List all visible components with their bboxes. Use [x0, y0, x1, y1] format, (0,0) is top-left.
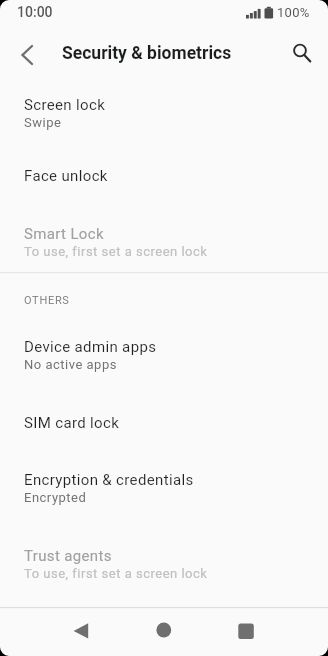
staticText: To use, first set a screen lock	[24, 566, 208, 581]
button[interactable]: Encryption & credentials	[0, 461, 328, 537]
staticText: 10:00	[17, 4, 53, 20]
staticText: Swipe	[24, 115, 62, 130]
staticText: Security & biometrics	[62, 43, 232, 64]
staticText: OTHERS	[24, 294, 70, 307]
button[interactable]: Smart Lock	[0, 214, 328, 272]
button[interactable]	[284, 34, 318, 68]
staticText: Encryption & credentials	[24, 471, 194, 489]
staticText: Device admin apps	[24, 338, 157, 356]
button[interactable]	[59, 608, 103, 652]
button[interactable]	[142, 608, 186, 652]
staticText: SIM card lock	[24, 414, 120, 432]
button[interactable]: Face unlock	[0, 157, 328, 214]
button[interactable]	[10, 38, 44, 72]
staticText: Smart Lock	[24, 225, 104, 243]
staticText: Face unlock	[24, 167, 108, 185]
button[interactable]: Trust agents	[0, 537, 328, 597]
button[interactable]: Screen lock	[0, 86, 328, 157]
staticText: Screen lock	[24, 96, 106, 114]
staticText: To use, first set a screen lock	[24, 244, 208, 259]
staticText: Encrypted	[24, 490, 87, 505]
button[interactable]: SIM card lock	[0, 404, 328, 461]
staticText: No active apps	[24, 357, 117, 372]
staticText: 100%	[277, 5, 310, 20]
staticText: Trust agents	[24, 547, 112, 565]
button[interactable]: Device admin apps	[0, 328, 328, 404]
button[interactable]	[224, 608, 268, 652]
